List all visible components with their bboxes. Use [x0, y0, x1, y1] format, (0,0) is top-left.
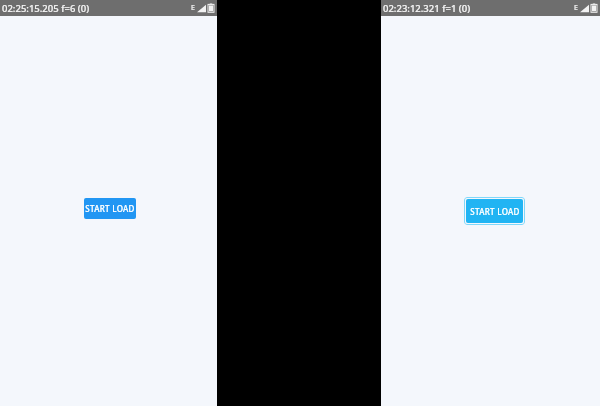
button[interactable]: START LOAD [466, 199, 523, 223]
staticText: START LOAD [85, 203, 135, 214]
staticText: E [574, 3, 578, 13]
staticText: 02:23:12.321 f=1 (0) [383, 2, 471, 15]
staticText: 02:25:15.205 f=6 (0) [2, 2, 90, 15]
other: Signal strength [580, 4, 589, 13]
other: Battery [208, 3, 214, 13]
staticText: E [191, 3, 195, 13]
button[interactable]: START LOAD [84, 198, 136, 219]
staticText: START LOAD [470, 206, 520, 217]
other: Battery [591, 3, 597, 13]
other: Signal strength [197, 4, 206, 13]
